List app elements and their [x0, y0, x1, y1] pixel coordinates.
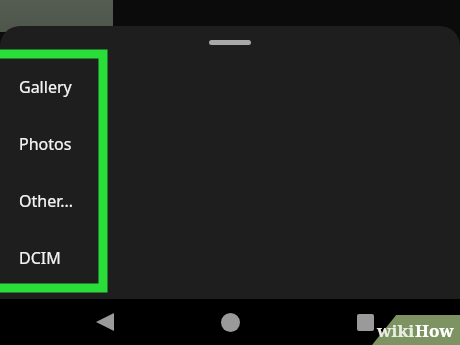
staticText: DCIM	[19, 247, 61, 269]
button[interactable]: Photos	[0, 115, 460, 172]
button[interactable]: Gallery	[0, 58, 460, 115]
staticText: Other...	[19, 190, 74, 212]
staticText: wiki	[377, 319, 415, 342]
button[interactable]: Back	[83, 300, 127, 344]
button[interactable]: Recent apps	[343, 300, 387, 344]
staticText: How	[415, 319, 454, 342]
button[interactable]: Other...	[0, 172, 460, 229]
button[interactable]: Home	[208, 300, 252, 344]
button[interactable]: DCIM	[0, 229, 460, 286]
staticText: Photos	[19, 133, 72, 155]
staticText: Gallery	[19, 76, 72, 98]
